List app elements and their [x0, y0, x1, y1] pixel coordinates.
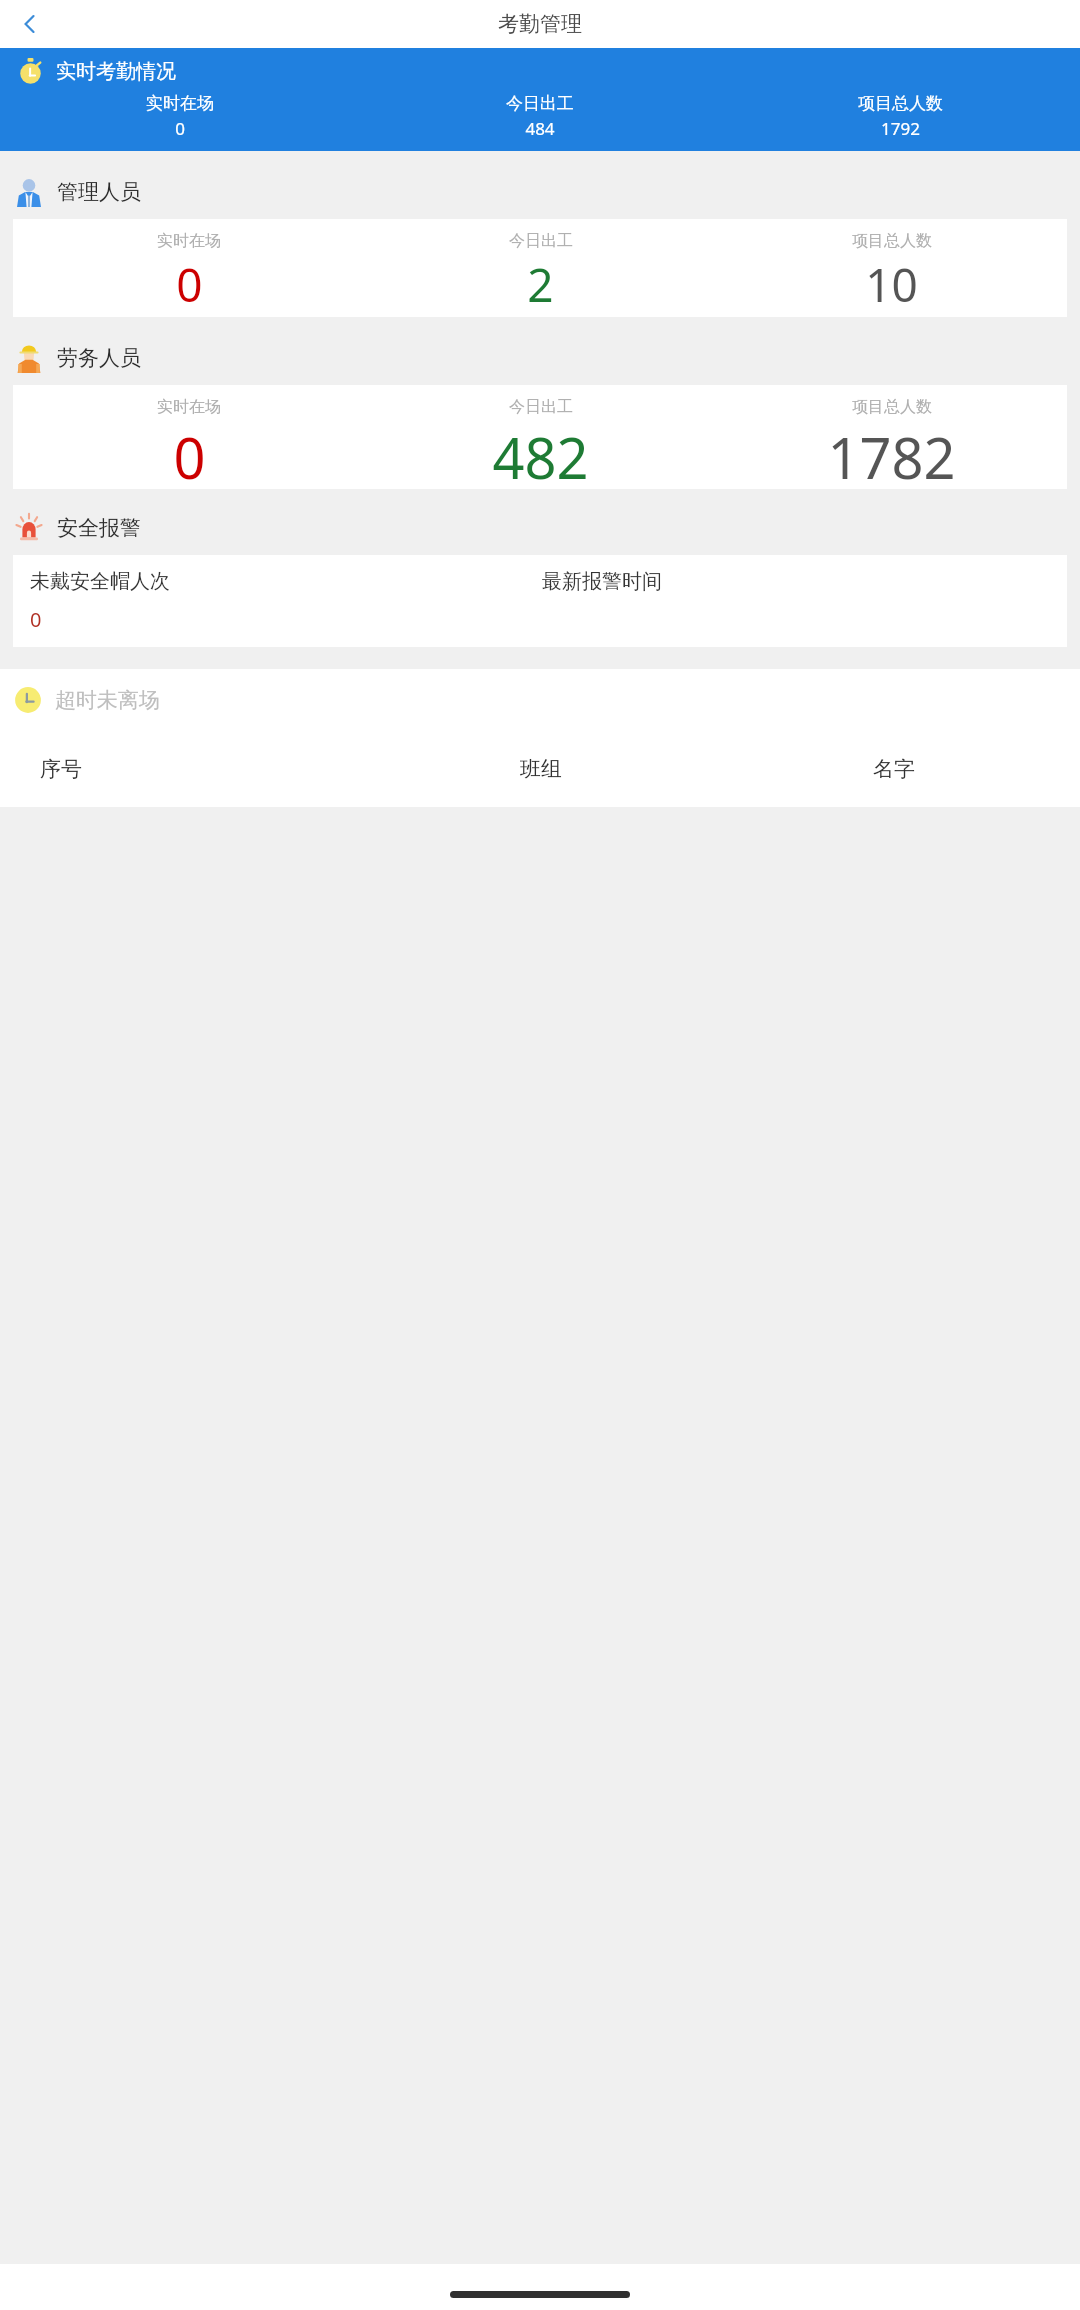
staticText: 最新报警时间	[542, 569, 662, 594]
staticText: 482	[492, 419, 589, 489]
staticText: 实时在场	[146, 93, 214, 114]
button[interactable]: 管理人员	[14, 165, 1080, 219]
staticText: 0	[173, 419, 206, 489]
staticText: 实时在场	[157, 397, 221, 417]
staticText: 10	[865, 253, 918, 316]
button[interactable]: 安全报警	[14, 501, 1080, 555]
button[interactable]: 未戴安全帽人次	[13, 555, 1067, 647]
button[interactable]: 超时未离场	[14, 669, 1080, 731]
staticText: 考勤管理	[498, 11, 582, 37]
staticText: 项目总人数	[858, 93, 943, 114]
staticText: 超时未离场	[55, 687, 160, 713]
staticText: 未戴安全帽人次	[30, 569, 170, 594]
staticText: 管理人员	[57, 179, 141, 205]
staticText: 0	[30, 606, 42, 633]
staticText: 序号	[40, 756, 82, 782]
staticText: 2	[527, 253, 554, 316]
staticText: 劳务人员	[57, 345, 141, 371]
staticText: 0	[175, 117, 185, 140]
staticText: 0	[176, 253, 203, 316]
staticText: 今日出工	[509, 397, 573, 417]
staticText: 名字	[873, 756, 915, 782]
button[interactable]: 劳务人员	[14, 331, 1080, 385]
button[interactable]: 实时在场	[13, 385, 1067, 489]
button[interactable]: 实时考勤情况	[0, 48, 1080, 151]
button[interactable]: 返回	[8, 2, 52, 46]
staticText: 项目总人数	[852, 231, 932, 251]
staticText: 484	[525, 117, 555, 140]
staticText: 今日出工	[506, 93, 574, 114]
button[interactable]: 实时在场	[13, 219, 1067, 317]
staticText: 今日出工	[509, 231, 573, 251]
staticText: 实时在场	[157, 231, 221, 251]
staticText: 班组	[520, 756, 562, 782]
staticText: 项目总人数	[852, 397, 932, 417]
staticText: 实时考勤情况	[56, 59, 176, 84]
staticText: 1782	[827, 419, 956, 489]
staticText: 1792	[881, 117, 920, 140]
staticText: 安全报警	[57, 515, 141, 541]
